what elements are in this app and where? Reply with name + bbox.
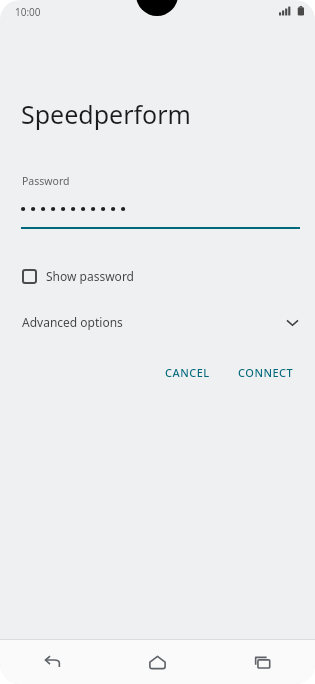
button[interactable]: Show password [0,265,315,287]
button[interactable]: Recent apps [210,640,315,684]
staticText: 10:00 [15,5,41,19]
button[interactable]: Advanced options [0,311,315,333]
staticText: Speedperform [21,97,191,131]
button[interactable] [0,200,315,218]
staticText: Advanced options [22,314,123,330]
staticText: CANCEL [165,365,210,380]
button[interactable]: CANCEL [157,359,218,386]
staticText: Password [22,174,70,188]
button[interactable]: Back [0,640,105,684]
staticText: CONNECT [238,365,294,380]
staticText: Show password [46,268,134,284]
button[interactable]: CONNECT [230,359,302,386]
button[interactable]: Home [105,640,210,684]
